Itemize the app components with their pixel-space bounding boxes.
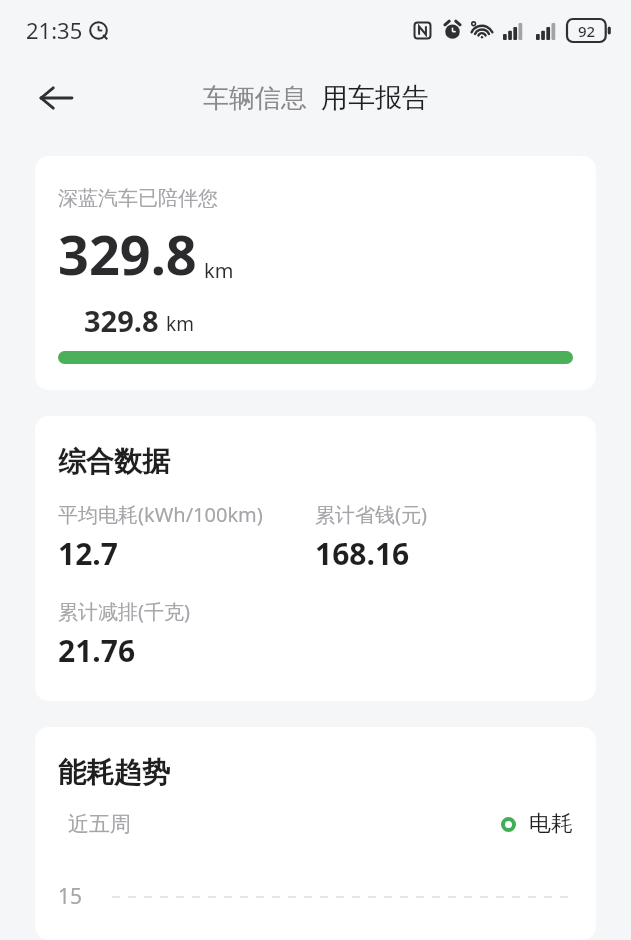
staticText: 车辆信息	[203, 82, 307, 115]
staticText: 深蓝汽车已陪伴您	[58, 186, 218, 211]
staticText: 累计省钱(元)	[315, 501, 427, 528]
button[interactable]: 综合数据	[35, 416, 596, 701]
button[interactable]: 深蓝汽车已陪伴您	[35, 156, 596, 390]
staticText: 168.16	[315, 533, 410, 574]
staticText: 电耗	[529, 810, 573, 838]
staticText: 329.8	[84, 301, 159, 340]
staticText: 21.76	[58, 630, 136, 671]
staticText: 15	[58, 882, 112, 911]
staticText: km	[204, 257, 234, 284]
staticText: 21:35	[26, 15, 83, 45]
staticText: 能耗趋势	[58, 755, 170, 790]
staticText: 12.7	[58, 533, 118, 574]
staticText: 综合数据	[58, 444, 170, 479]
staticText: 用车报告	[321, 81, 429, 115]
button[interactable]: 用车报告	[321, 81, 429, 115]
button[interactable]: 电耗	[501, 810, 573, 838]
staticText: km	[166, 311, 194, 337]
staticText: 平均电耗(kWh/100km)	[58, 501, 263, 528]
staticText: 累计减排(千克)	[58, 598, 190, 625]
staticText: 329.8	[58, 217, 197, 291]
button[interactable]: 车辆信息	[203, 82, 307, 115]
staticText: 92	[578, 21, 596, 41]
button[interactable]: 能耗趋势	[35, 727, 596, 940]
staticText: 近五周	[68, 811, 131, 837]
button[interactable]: Back	[34, 76, 78, 120]
